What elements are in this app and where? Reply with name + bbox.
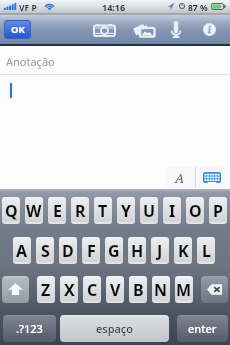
button[interactable]: J <box>151 237 169 264</box>
button[interactable]: U <box>140 197 158 224</box>
button[interactable]: V <box>106 276 124 303</box>
button[interactable]: Camera <box>89 15 120 44</box>
button[interactable]: .?123 <box>3 315 56 342</box>
button[interactable]: W <box>25 197 43 224</box>
staticText: D <box>62 240 74 262</box>
staticText: S <box>41 240 50 262</box>
button[interactable]: K <box>174 237 192 264</box>
button[interactable]: D <box>59 237 77 264</box>
button[interactable]: B <box>129 276 147 303</box>
button[interactable]: Q <box>2 197 20 224</box>
button[interactable]: Shift <box>2 276 29 303</box>
staticText: Anotação <box>6 54 55 69</box>
button[interactable]: L <box>197 237 215 264</box>
button[interactable]: espaço <box>60 315 169 342</box>
staticText: H <box>131 240 144 262</box>
staticText: enter <box>188 321 217 336</box>
button[interactable]: Backspace <box>201 276 228 303</box>
button[interactable]: S <box>36 237 54 264</box>
staticText: OK <box>11 23 25 36</box>
button[interactable]: H <box>128 237 146 264</box>
staticText: O <box>189 200 202 222</box>
button[interactable]: Y <box>117 197 135 224</box>
button[interactable]: O <box>186 197 204 224</box>
staticText: espaço <box>96 321 133 336</box>
button[interactable]: F <box>82 237 100 264</box>
button[interactable]: Text formatting <box>165 167 195 188</box>
staticText: V <box>110 279 121 301</box>
button[interactable]: C <box>83 276 101 303</box>
button[interactable]: G <box>105 237 123 264</box>
button[interactable]: X <box>60 276 78 303</box>
staticText: 14:16 <box>102 1 126 13</box>
staticText: 87 % <box>188 2 208 14</box>
button[interactable]: N <box>152 276 170 303</box>
staticText: X <box>64 279 75 301</box>
staticText: I <box>169 200 176 222</box>
button[interactable]: Info <box>198 15 221 44</box>
staticText: A <box>16 240 28 262</box>
button[interactable]: enter <box>177 315 228 342</box>
staticText: Q <box>5 200 18 222</box>
staticText: T <box>98 200 108 222</box>
button[interactable]: Keyboard <box>196 167 227 188</box>
staticText: VF P <box>19 2 37 14</box>
staticText: A <box>175 169 185 187</box>
button[interactable]: Microphone <box>166 15 186 44</box>
staticText: R <box>75 200 86 222</box>
staticText: P <box>213 200 223 222</box>
staticText: K <box>178 240 189 262</box>
staticText: N <box>154 279 168 301</box>
staticText: C <box>87 279 98 301</box>
button[interactable]: E <box>48 197 66 224</box>
staticText: L <box>202 240 211 262</box>
staticText: .?123 <box>16 321 43 336</box>
staticText: U <box>143 200 156 222</box>
staticText: G <box>108 240 120 262</box>
button[interactable]: R <box>71 197 89 224</box>
button[interactable]: I <box>163 197 181 224</box>
button[interactable]: Photo library <box>126 15 160 44</box>
staticText: Y <box>121 200 132 222</box>
staticText: M <box>176 279 192 301</box>
staticText: B <box>133 279 144 301</box>
staticText: W <box>26 200 42 222</box>
button[interactable]: P <box>209 197 227 224</box>
button[interactable]: T <box>94 197 112 224</box>
button[interactable]: A <box>13 237 31 264</box>
button[interactable]: M <box>175 276 193 303</box>
button[interactable]: OK <box>5 21 30 38</box>
staticText: F <box>87 240 96 262</box>
staticText: J <box>157 240 163 262</box>
staticText: Z <box>41 279 51 301</box>
staticText: E <box>53 200 62 222</box>
button[interactable]: Z <box>37 276 55 303</box>
